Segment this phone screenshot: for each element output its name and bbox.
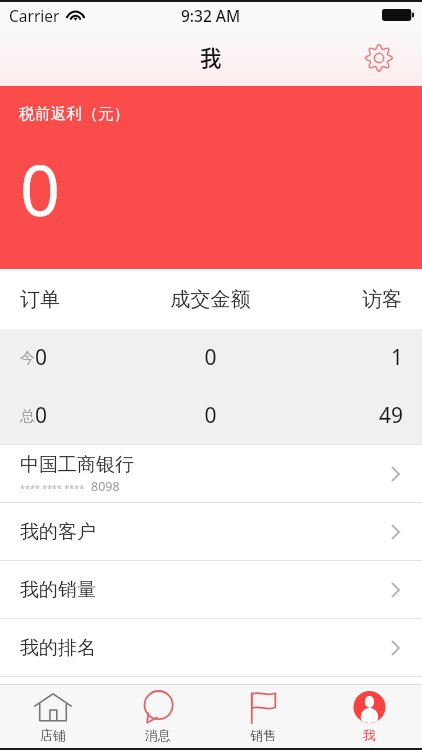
button[interactable]: 店铺 [0,685,105,748]
staticText: 0 [140,343,281,372]
staticText: 我的销量 [20,578,391,602]
button[interactable]: 消息 [105,685,210,748]
staticText: 销售 [250,727,276,743]
staticText: 0 [35,343,48,372]
button[interactable]: Settings [361,40,397,76]
button[interactable]: 我的销量 [0,561,422,618]
staticText: 税前返利（元） [19,104,130,124]
staticText: 今 [20,349,35,368]
staticText: 订单 [20,287,140,312]
staticText: Carrier [9,5,60,26]
staticText: 中国工商银行 [20,453,134,477]
button[interactable]: 我的客户 [0,503,422,560]
staticText: 总 [20,407,35,426]
button[interactable]: 中国工商银行 [0,445,422,502]
staticText: 49 [281,401,403,430]
staticText: 店铺 [40,727,66,743]
staticText: 我 [363,727,376,743]
staticText: 0 [140,401,281,430]
staticText: 访客 [281,287,402,312]
staticText: 消息 [145,727,171,743]
staticText: 我的客户 [20,520,391,544]
staticText: 我的排名 [20,636,391,660]
staticText: **** **** **** [20,482,85,494]
staticText: 0 [20,141,61,236]
staticText: 0 [35,401,48,430]
button[interactable]: 我 [316,685,422,748]
button[interactable]: 销售 [210,685,316,748]
staticText: 9:32 AM [181,5,241,26]
staticText: 成交金额 [140,287,281,312]
button[interactable]: 我的排名 [0,619,422,676]
staticText: 8098 [91,478,120,495]
staticText: 我 [200,41,222,72]
staticText: 1 [281,343,403,372]
